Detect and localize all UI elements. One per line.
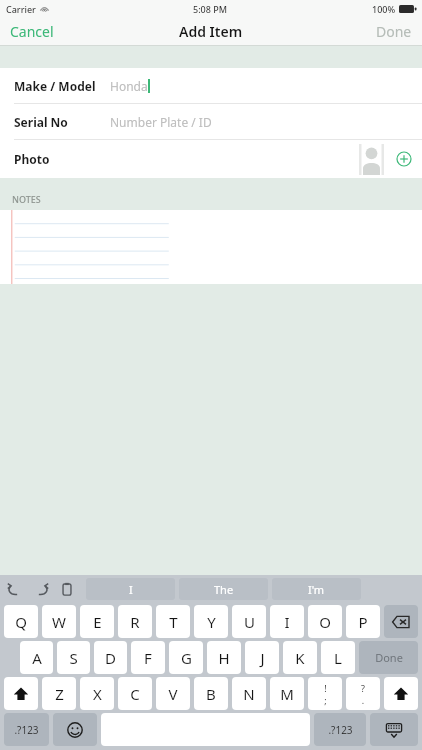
button[interactable]: K xyxy=(283,641,317,674)
button[interactable]: I'm xyxy=(272,578,361,600)
button[interactable]: Emoji xyxy=(53,713,97,746)
staticText: Q xyxy=(15,612,27,632)
staticText: C xyxy=(130,684,140,704)
button[interactable]: Y xyxy=(194,605,228,638)
staticText: E xyxy=(93,612,102,632)
button[interactable]: .?123 xyxy=(4,713,49,746)
staticText: Add Item xyxy=(179,22,243,41)
button[interactable]: F xyxy=(131,641,165,674)
staticText: H xyxy=(218,648,230,668)
staticText: D xyxy=(105,648,116,668)
button[interactable] xyxy=(0,210,422,284)
button[interactable]: I xyxy=(86,578,175,600)
staticText: ! ; xyxy=(324,682,327,706)
button[interactable]: Add photo xyxy=(396,151,412,167)
button[interactable]: Hide keyboard xyxy=(370,713,418,746)
staticText: Done xyxy=(375,650,403,665)
button[interactable]: X xyxy=(80,677,114,710)
button[interactable]: W xyxy=(42,605,76,638)
staticText: .?123 xyxy=(14,723,39,737)
staticText: J xyxy=(260,648,265,668)
button[interactable]: Undo xyxy=(6,580,24,598)
staticText: G xyxy=(181,648,192,668)
staticText: P xyxy=(358,612,368,632)
staticText: Y xyxy=(207,612,216,632)
staticText: I xyxy=(129,582,133,597)
button[interactable]: L xyxy=(321,641,355,674)
staticText: N xyxy=(243,684,255,704)
staticText: Number Plate / ID xyxy=(110,114,212,130)
staticText: Make / Model xyxy=(14,78,110,94)
staticText: I xyxy=(284,612,290,632)
button[interactable]: Photo xyxy=(0,140,422,178)
staticText: V xyxy=(168,684,178,704)
button[interactable]: D xyxy=(94,641,127,674)
staticText: T xyxy=(169,612,178,632)
button[interactable]: P xyxy=(346,605,380,638)
staticText: A xyxy=(32,648,42,668)
other: Photo placeholder xyxy=(359,144,384,175)
button[interactable]: Done xyxy=(359,641,418,674)
staticText: 5:08 PM xyxy=(193,3,227,15)
staticText: Serial No xyxy=(14,114,110,130)
staticText: Cancel xyxy=(10,22,54,41)
button[interactable]: B xyxy=(194,677,228,710)
button[interactable]: H xyxy=(207,641,241,674)
button[interactable]: U xyxy=(232,605,266,638)
staticText: .?123 xyxy=(328,723,353,737)
button[interactable]: Q xyxy=(4,605,38,638)
staticText: X xyxy=(93,684,102,704)
button[interactable]: Make / Model xyxy=(0,68,422,103)
button[interactable]: R xyxy=(118,605,152,638)
staticText: Carrier xyxy=(6,3,36,15)
staticText: M xyxy=(280,684,294,704)
button[interactable]: .?123 xyxy=(314,713,366,746)
staticText: 100% xyxy=(372,3,396,15)
staticText: S xyxy=(69,648,78,668)
button[interactable]: The xyxy=(179,578,268,600)
staticText: F xyxy=(144,648,152,668)
staticText: Honda xyxy=(110,78,148,94)
button[interactable]: Serial No xyxy=(0,104,422,139)
button[interactable]: M xyxy=(270,677,304,710)
button[interactable]: C xyxy=(118,677,152,710)
button[interactable]: ? . xyxy=(346,677,380,710)
staticText: ? . xyxy=(361,682,365,706)
staticText: U xyxy=(244,612,255,632)
button[interactable]: ! ; xyxy=(308,677,342,710)
button[interactable]: Cancel xyxy=(0,18,64,45)
button[interactable]: Backspace xyxy=(384,605,418,638)
button[interactable]: Shift xyxy=(384,677,418,710)
button[interactable]: O xyxy=(308,605,342,638)
staticText: R xyxy=(130,612,140,632)
button[interactable]: S xyxy=(57,641,90,674)
staticText: I'm xyxy=(308,582,325,597)
button[interactable]: V xyxy=(156,677,190,710)
staticText: The xyxy=(214,582,234,597)
staticText: NOTES xyxy=(12,193,41,205)
staticText: K xyxy=(295,648,305,668)
button[interactable]: Shift xyxy=(4,677,38,710)
staticText: L xyxy=(334,648,342,668)
button[interactable]: N xyxy=(232,677,266,710)
button[interactable]: A xyxy=(20,641,53,674)
staticText: Done xyxy=(376,22,412,41)
button[interactable]: E xyxy=(80,605,114,638)
button[interactable]: Redo xyxy=(32,580,50,598)
button[interactable]: Paste xyxy=(58,580,76,598)
staticText: W xyxy=(52,612,66,632)
staticText: B xyxy=(206,684,216,704)
staticText: O xyxy=(319,612,331,632)
button[interactable]: T xyxy=(156,605,190,638)
button[interactable]: J xyxy=(245,641,279,674)
button[interactable]: Z xyxy=(42,677,76,710)
staticText: Z xyxy=(55,684,64,704)
button[interactable]: I xyxy=(270,605,304,638)
button[interactable]: Done xyxy=(366,18,422,45)
staticText: Photo xyxy=(14,151,50,167)
button[interactable]: G xyxy=(169,641,203,674)
